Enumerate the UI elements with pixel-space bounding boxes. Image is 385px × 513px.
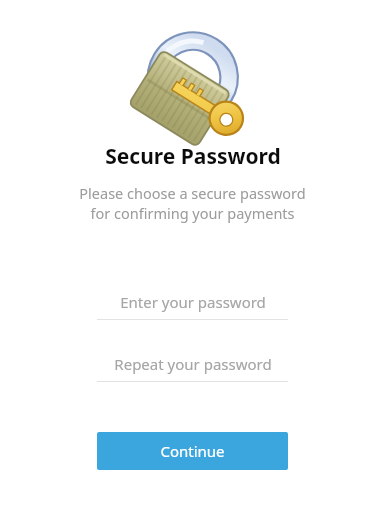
button[interactable]: Repeat your password (97, 347, 288, 382)
staticText: Please choose a secure password for conf… (0, 183, 385, 223)
button[interactable]: Enter your password (97, 285, 288, 320)
button[interactable]: Continue (97, 432, 288, 470)
staticText: Continue (160, 441, 225, 461)
staticText: Secure Password (105, 142, 281, 171)
staticText: Enter your password (120, 292, 266, 312)
other: Locked with key (135, 15, 251, 131)
staticText: Repeat your password (114, 354, 272, 374)
